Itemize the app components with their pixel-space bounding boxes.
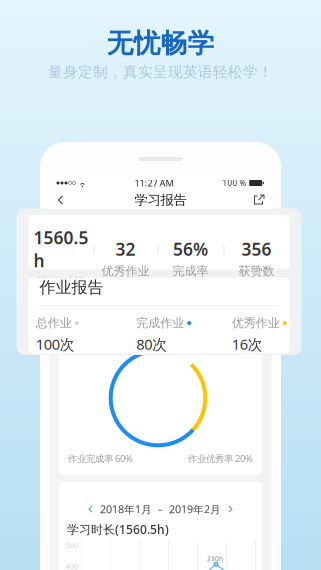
staticText: 56% (173, 237, 208, 260)
staticText: 作业完成率 60% (68, 452, 133, 465)
staticText: 学习报告 (134, 192, 186, 208)
staticText: 80次 (136, 334, 167, 354)
staticText: 32 (115, 237, 135, 260)
staticText: 356 (241, 237, 271, 260)
staticText: 获赞数 (238, 263, 274, 278)
staticText: 100 % (222, 178, 246, 188)
staticText: 230h (207, 554, 223, 563)
staticText: 400 (66, 562, 78, 570)
staticText: 优秀作业 (232, 316, 280, 330)
staticText: 优秀作业 (101, 263, 149, 278)
staticText: 1560.5h (33, 226, 88, 272)
staticText: 作业优秀率 20% (188, 452, 253, 465)
button[interactable]: Previous period (87, 504, 94, 514)
staticText: 16次 (232, 334, 263, 354)
staticText: 作业报告 (39, 277, 103, 297)
staticText: 无忧畅学 (106, 27, 214, 60)
staticText: 11:27 AM (134, 177, 173, 189)
button[interactable]: Back (54, 192, 66, 208)
staticText: 2018年1月 － 2019年2月 (100, 502, 221, 516)
button[interactable]: Next period (227, 504, 234, 514)
staticText: 完成率 (172, 263, 208, 278)
staticText: 总作业 (36, 316, 72, 330)
staticText: 学习时长(1560.5h) (67, 521, 169, 537)
staticText: 500 (66, 541, 78, 550)
staticText: 100次 (36, 334, 75, 354)
staticText: 完成作业 (136, 316, 184, 330)
staticText: 量身定制，真实呈现英语轻松学！ (48, 63, 273, 81)
staticText: 学习时长 (37, 275, 85, 290)
button[interactable]: Share (252, 193, 266, 207)
